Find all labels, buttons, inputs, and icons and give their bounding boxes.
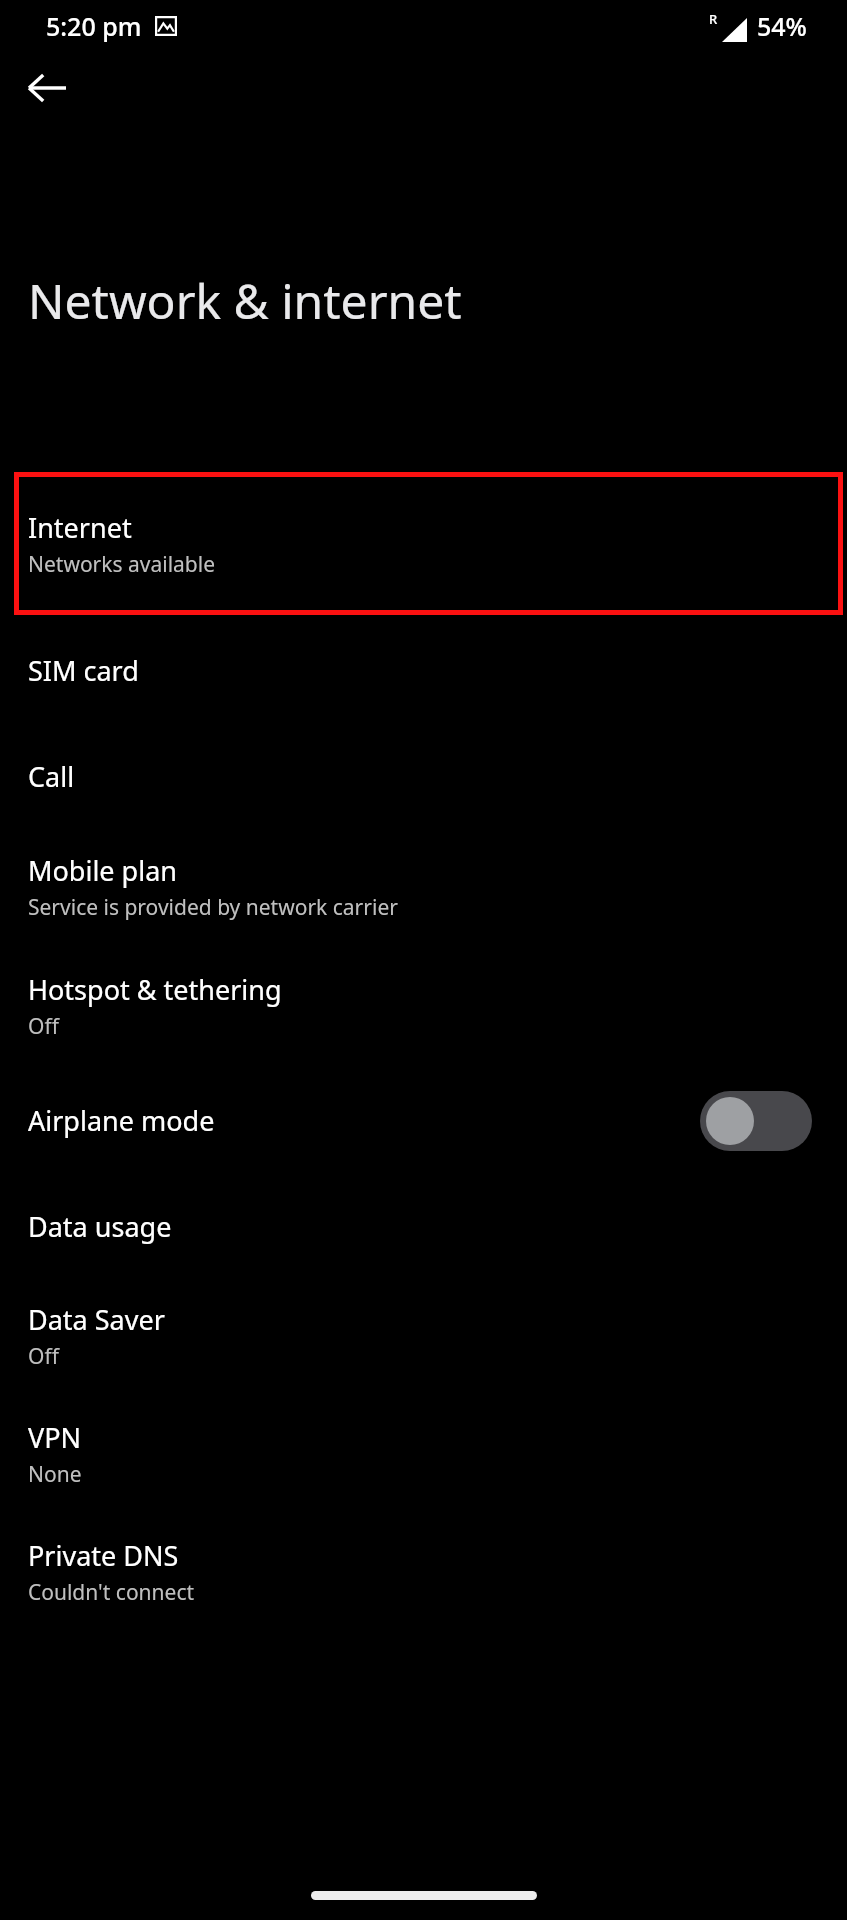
button[interactable]: Call: [0, 726, 847, 827]
button[interactable]: Back: [0, 41, 94, 135]
staticText: Network & internet: [28, 268, 462, 333]
staticText: Airplane mode: [28, 1102, 215, 1139]
staticText: Couldn't connect: [28, 1578, 195, 1607]
staticText: Data Saver: [28, 1301, 165, 1338]
button[interactable]: Internet: [0, 472, 847, 615]
staticText: 5:20 pm: [46, 9, 142, 43]
staticText: Data usage: [28, 1208, 172, 1245]
button[interactable]: Data usage: [0, 1176, 847, 1277]
staticText: Hotspot & tethering: [28, 971, 282, 1008]
staticText: Internet: [28, 509, 132, 546]
button[interactable]: Data Saver: [0, 1277, 847, 1395]
staticText: Service is provided by network carrier: [28, 893, 398, 922]
staticText: 54%: [757, 9, 807, 43]
staticText: None: [28, 1460, 82, 1489]
staticText: SIM card: [28, 652, 139, 689]
button[interactable]: Private DNS: [0, 1513, 847, 1631]
staticText: VPN: [28, 1419, 82, 1456]
staticText: Networks available: [28, 550, 216, 579]
staticText: Call: [28, 758, 75, 795]
button[interactable]: Mobile plan: [0, 827, 847, 947]
button[interactable]: Hotspot & tethering: [0, 947, 847, 1065]
staticText: Private DNS: [28, 1537, 179, 1574]
staticText: Mobile plan: [28, 852, 178, 889]
staticText: Off: [28, 1012, 59, 1041]
staticText: R: [709, 10, 718, 28]
button[interactable]: Airplane mode: [700, 1091, 812, 1151]
button[interactable]: VPN: [0, 1395, 847, 1513]
button[interactable]: SIM card: [0, 615, 847, 726]
button[interactable]: Airplane mode: [0, 1065, 847, 1176]
staticText: Off: [28, 1342, 59, 1371]
